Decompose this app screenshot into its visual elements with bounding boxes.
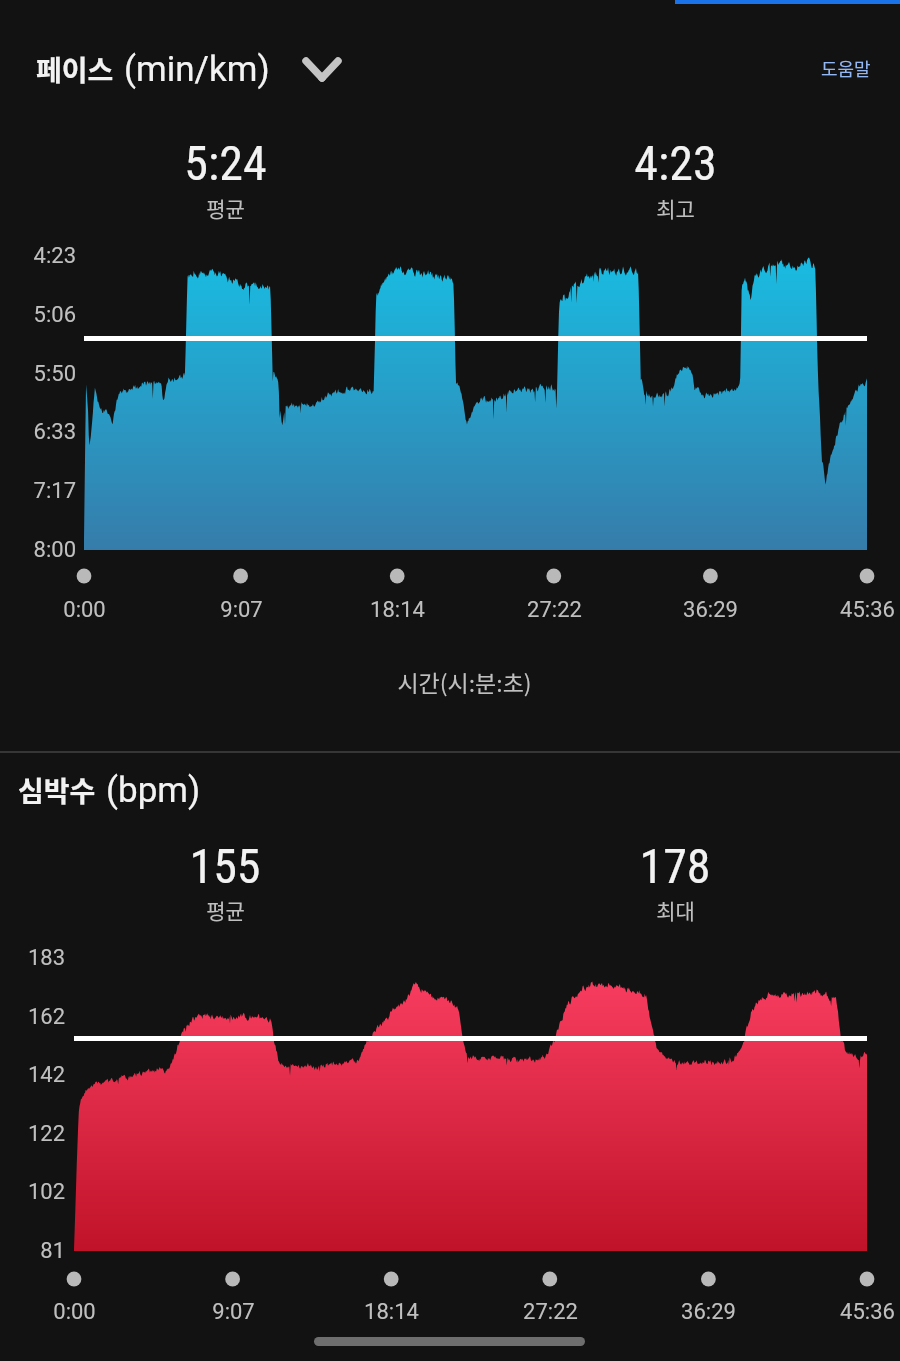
staticText: 4:23 xyxy=(33,243,76,269)
staticText: 102 xyxy=(27,1179,65,1205)
button[interactable]: 심박수 xyxy=(18,762,201,818)
staticText: 7:17 xyxy=(33,478,76,504)
staticText: 9:07 xyxy=(220,597,263,623)
staticText: (min/km) xyxy=(124,49,270,90)
button[interactable]: Change metric xyxy=(300,47,344,91)
staticText: 122 xyxy=(27,1121,65,1147)
staticText: 페이스 xyxy=(36,49,114,90)
staticText: 4:23 xyxy=(634,135,717,191)
staticText: 155 xyxy=(189,838,261,894)
staticText: 시간(시:분:초) xyxy=(397,665,532,698)
staticText: 178 xyxy=(639,838,711,894)
staticText: (bpm) xyxy=(106,770,201,811)
staticText: 36:29 xyxy=(683,597,738,623)
staticText: 183 xyxy=(27,945,65,971)
staticText: 36:29 xyxy=(681,1299,736,1325)
staticText: 5:06 xyxy=(33,302,76,328)
staticText: 최대 xyxy=(656,895,695,925)
staticText: 0:00 xyxy=(63,597,106,623)
staticText: 6:33 xyxy=(33,419,76,445)
button[interactable]: 도움말 xyxy=(799,43,893,93)
staticText: 18:14 xyxy=(370,597,425,623)
staticText: 27:22 xyxy=(527,597,582,623)
staticText: 81 xyxy=(40,1238,65,1264)
staticText: 평균 xyxy=(206,193,245,223)
staticText: 심박수 xyxy=(18,770,96,811)
staticText: 27:22 xyxy=(523,1299,578,1325)
button[interactable]: 페이스 xyxy=(36,41,344,97)
staticText: 45:36 xyxy=(840,1299,895,1325)
staticText: 평균 xyxy=(206,895,245,925)
staticText: 0:00 xyxy=(53,1299,96,1325)
staticText: 9:07 xyxy=(212,1299,255,1325)
staticText: 5:24 xyxy=(184,135,267,191)
staticText: 18:14 xyxy=(364,1299,419,1325)
staticText: 도움말 xyxy=(821,55,871,81)
staticText: 5:50 xyxy=(33,361,76,387)
staticText: 162 xyxy=(27,1004,65,1030)
staticText: 142 xyxy=(27,1062,65,1088)
staticText: 최고 xyxy=(656,193,695,223)
staticText: 45:36 xyxy=(840,597,895,623)
staticText: 8:00 xyxy=(33,537,76,563)
